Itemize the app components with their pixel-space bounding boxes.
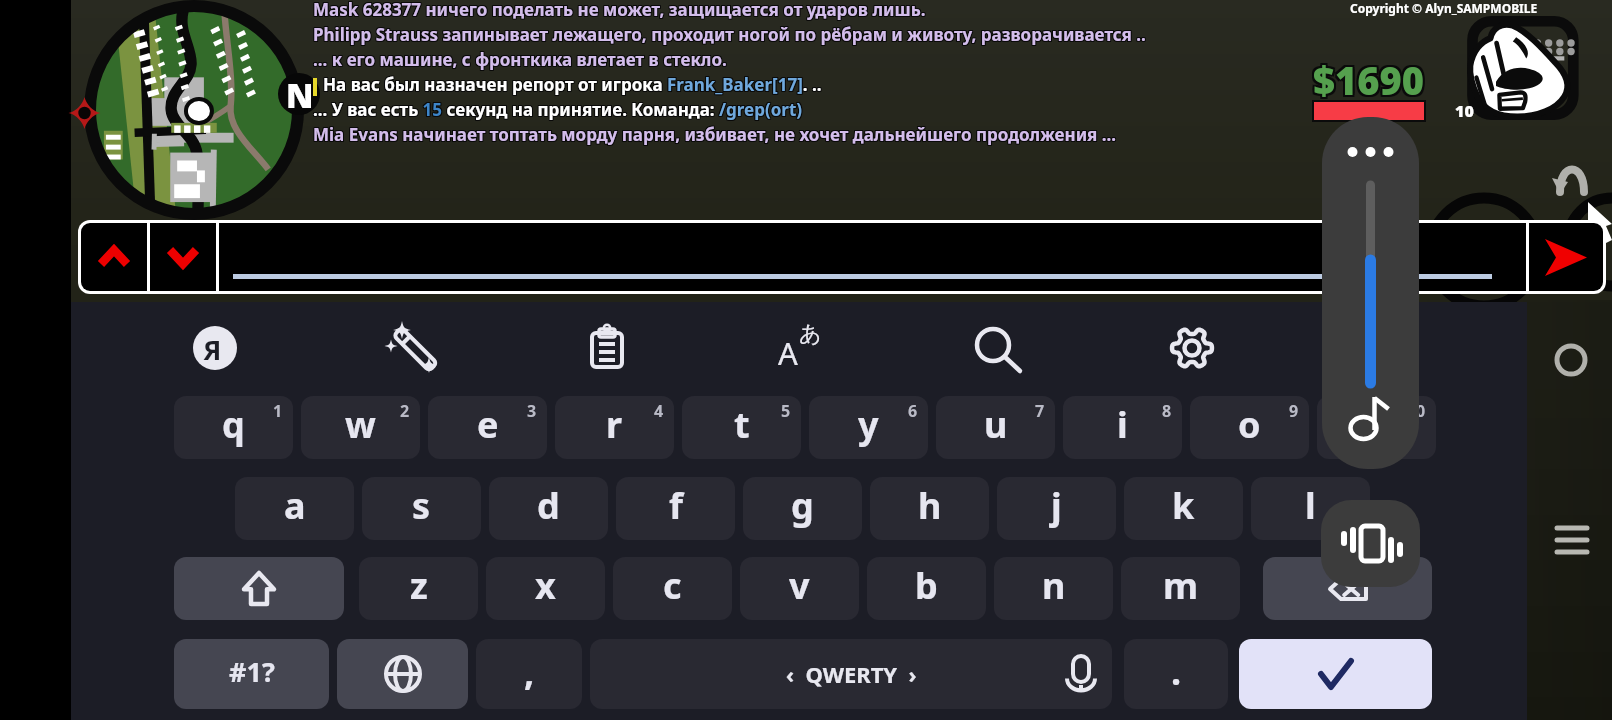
button[interactable]: f: [616, 477, 735, 540]
staticText: d: [537, 481, 560, 530]
staticText: k: [1172, 481, 1195, 530]
button[interactable]: Chat message input: [219, 223, 1526, 291]
button[interactable]: d: [489, 477, 608, 540]
button[interactable]: x: [486, 557, 605, 620]
staticText: $1690: [1315, 52, 1426, 104]
staticText: ,: [524, 647, 535, 696]
button[interactable]: g: [743, 477, 862, 540]
staticText: На вас был назначен репорт от игрока Fra…: [323, 74, 822, 97]
staticText: Mask 628377 ничего поделать не может, за…: [312, 0, 925, 22]
staticText: m: [1163, 561, 1199, 610]
staticText: .: [1171, 647, 1182, 696]
staticText: 0: [1416, 400, 1426, 422]
button[interactable]: Clipboard: [575, 316, 639, 380]
button[interactable]: q: [174, 396, 293, 459]
staticText: ... У вас есть 15 секунд на принятие. Ко…: [312, 98, 802, 121]
button[interactable]: p: [1317, 396, 1436, 459]
staticText: Mask 628377 ничего поделать не может, за…: [313, 0, 926, 21]
staticText: 9: [1289, 400, 1299, 422]
staticText: e: [477, 400, 499, 449]
staticText: Philipp Strauss запинывает лежащего, про…: [314, 23, 1147, 46]
staticText: $1690: [1315, 56, 1426, 108]
staticText: На вас был назначен репорт от игрока Fra…: [324, 74, 823, 97]
button[interactable]: b: [867, 557, 986, 620]
staticText: 2: [400, 400, 410, 422]
button[interactable]: Space: [590, 639, 1112, 709]
staticText: На вас был назначен репорт от игрока Fra…: [324, 72, 823, 95]
button[interactable]: Shift: [174, 557, 344, 620]
button[interactable]: y: [809, 396, 928, 459]
button[interactable]: a: [235, 477, 354, 540]
staticText: c: [663, 561, 682, 610]
button[interactable]: m: [1121, 557, 1240, 620]
staticText: Я: [203, 331, 222, 368]
button[interactable]: o: [1190, 396, 1309, 459]
staticText: a: [284, 481, 306, 530]
button[interactable]: n: [994, 557, 1113, 620]
button[interactable]: Send message: [1529, 223, 1603, 291]
staticText: ... к его машине, с фронткика влетает в …: [312, 48, 726, 71]
button[interactable]: Translate: [768, 316, 832, 380]
button[interactable]: r: [555, 396, 674, 459]
staticText: Mia Evans начинает топтать морду парня, …: [313, 122, 1117, 145]
button[interactable]: z: [359, 557, 478, 620]
staticText: ... к его машине, с фронткика влетает в …: [312, 47, 726, 70]
staticText: ... У вас есть 15 секунд на принятие. Ко…: [314, 98, 804, 121]
staticText: $1690: [1311, 54, 1422, 106]
button[interactable]: u: [936, 396, 1055, 459]
button[interactable]: Symbols: [174, 639, 329, 709]
button[interactable]: l: [1251, 477, 1370, 540]
button[interactable]: Search: [965, 316, 1029, 380]
button[interactable]: Scroll chat up: [81, 223, 147, 291]
button[interactable]: Yandex assistant: [183, 316, 247, 380]
staticText: q: [222, 400, 245, 449]
staticText: $1690: [1311, 56, 1422, 108]
button[interactable]: .: [1124, 639, 1228, 709]
staticText: j: [1051, 481, 1062, 530]
staticText: Philipp Strauss запинывает лежащего, про…: [312, 22, 1145, 45]
staticText: ... У вас есть 15 секунд на принятие. Ко…: [313, 98, 803, 121]
button[interactable]: j: [997, 477, 1116, 540]
staticText: Mask 628377 ничего поделать не может, за…: [313, 0, 926, 20]
button[interactable]: Keyboard settings: [1160, 316, 1224, 380]
button[interactable]: Scroll chat down: [150, 223, 216, 291]
staticText: b: [915, 561, 938, 610]
staticText: 7: [1035, 400, 1045, 422]
button[interactable]: t: [682, 396, 801, 459]
staticText: n: [1042, 561, 1066, 610]
staticText: 4: [654, 400, 664, 422]
button[interactable]: k: [1124, 477, 1243, 540]
staticText: ... У вас есть 15 секунд на принятие. Ко…: [314, 99, 804, 122]
staticText: ... к его машине, с фронткика влетает в …: [314, 48, 728, 71]
button[interactable]: i: [1063, 396, 1182, 459]
button[interactable]: Switch language: [337, 639, 468, 709]
staticText: ... к его машине, с фронткика влетает в …: [312, 49, 726, 72]
staticText: Philipp Strauss запинывает лежащего, про…: [312, 24, 1145, 47]
button[interactable]: v: [740, 557, 859, 620]
button[interactable]: Ringer mode: [1321, 500, 1420, 587]
staticText: Philipp Strauss запинывает лежащего, про…: [313, 23, 1146, 46]
button[interactable]: Volume slider: [1322, 117, 1419, 469]
staticText: v: [789, 561, 810, 610]
staticText: ... У вас есть 15 секунд на принятие. Ко…: [312, 99, 802, 122]
staticText: Mask 628377 ничего поделать не может, за…: [312, 0, 925, 21]
staticText: ‹ QWERTY ›: [786, 659, 917, 689]
button[interactable]: ,: [476, 639, 582, 709]
staticText: h: [918, 481, 942, 530]
staticText: o: [1238, 400, 1261, 449]
button[interactable]: c: [613, 557, 732, 620]
button[interactable]: w: [301, 396, 420, 459]
staticText: g: [791, 481, 814, 530]
button[interactable]: Backspace: [1263, 557, 1432, 620]
staticText: #1?: [229, 653, 275, 690]
button[interactable]: h: [870, 477, 989, 540]
button[interactable]: e: [428, 396, 547, 459]
staticText: s: [412, 481, 431, 530]
staticText: $1690: [1313, 54, 1424, 106]
button[interactable]: Smart correction: [380, 316, 444, 380]
staticText: 1: [273, 400, 283, 422]
staticText: 10: [1455, 100, 1474, 122]
staticText: ... к его машине, с фронткика влетает в …: [313, 47, 727, 70]
button[interactable]: s: [362, 477, 481, 540]
button[interactable]: Enter: [1239, 639, 1432, 709]
